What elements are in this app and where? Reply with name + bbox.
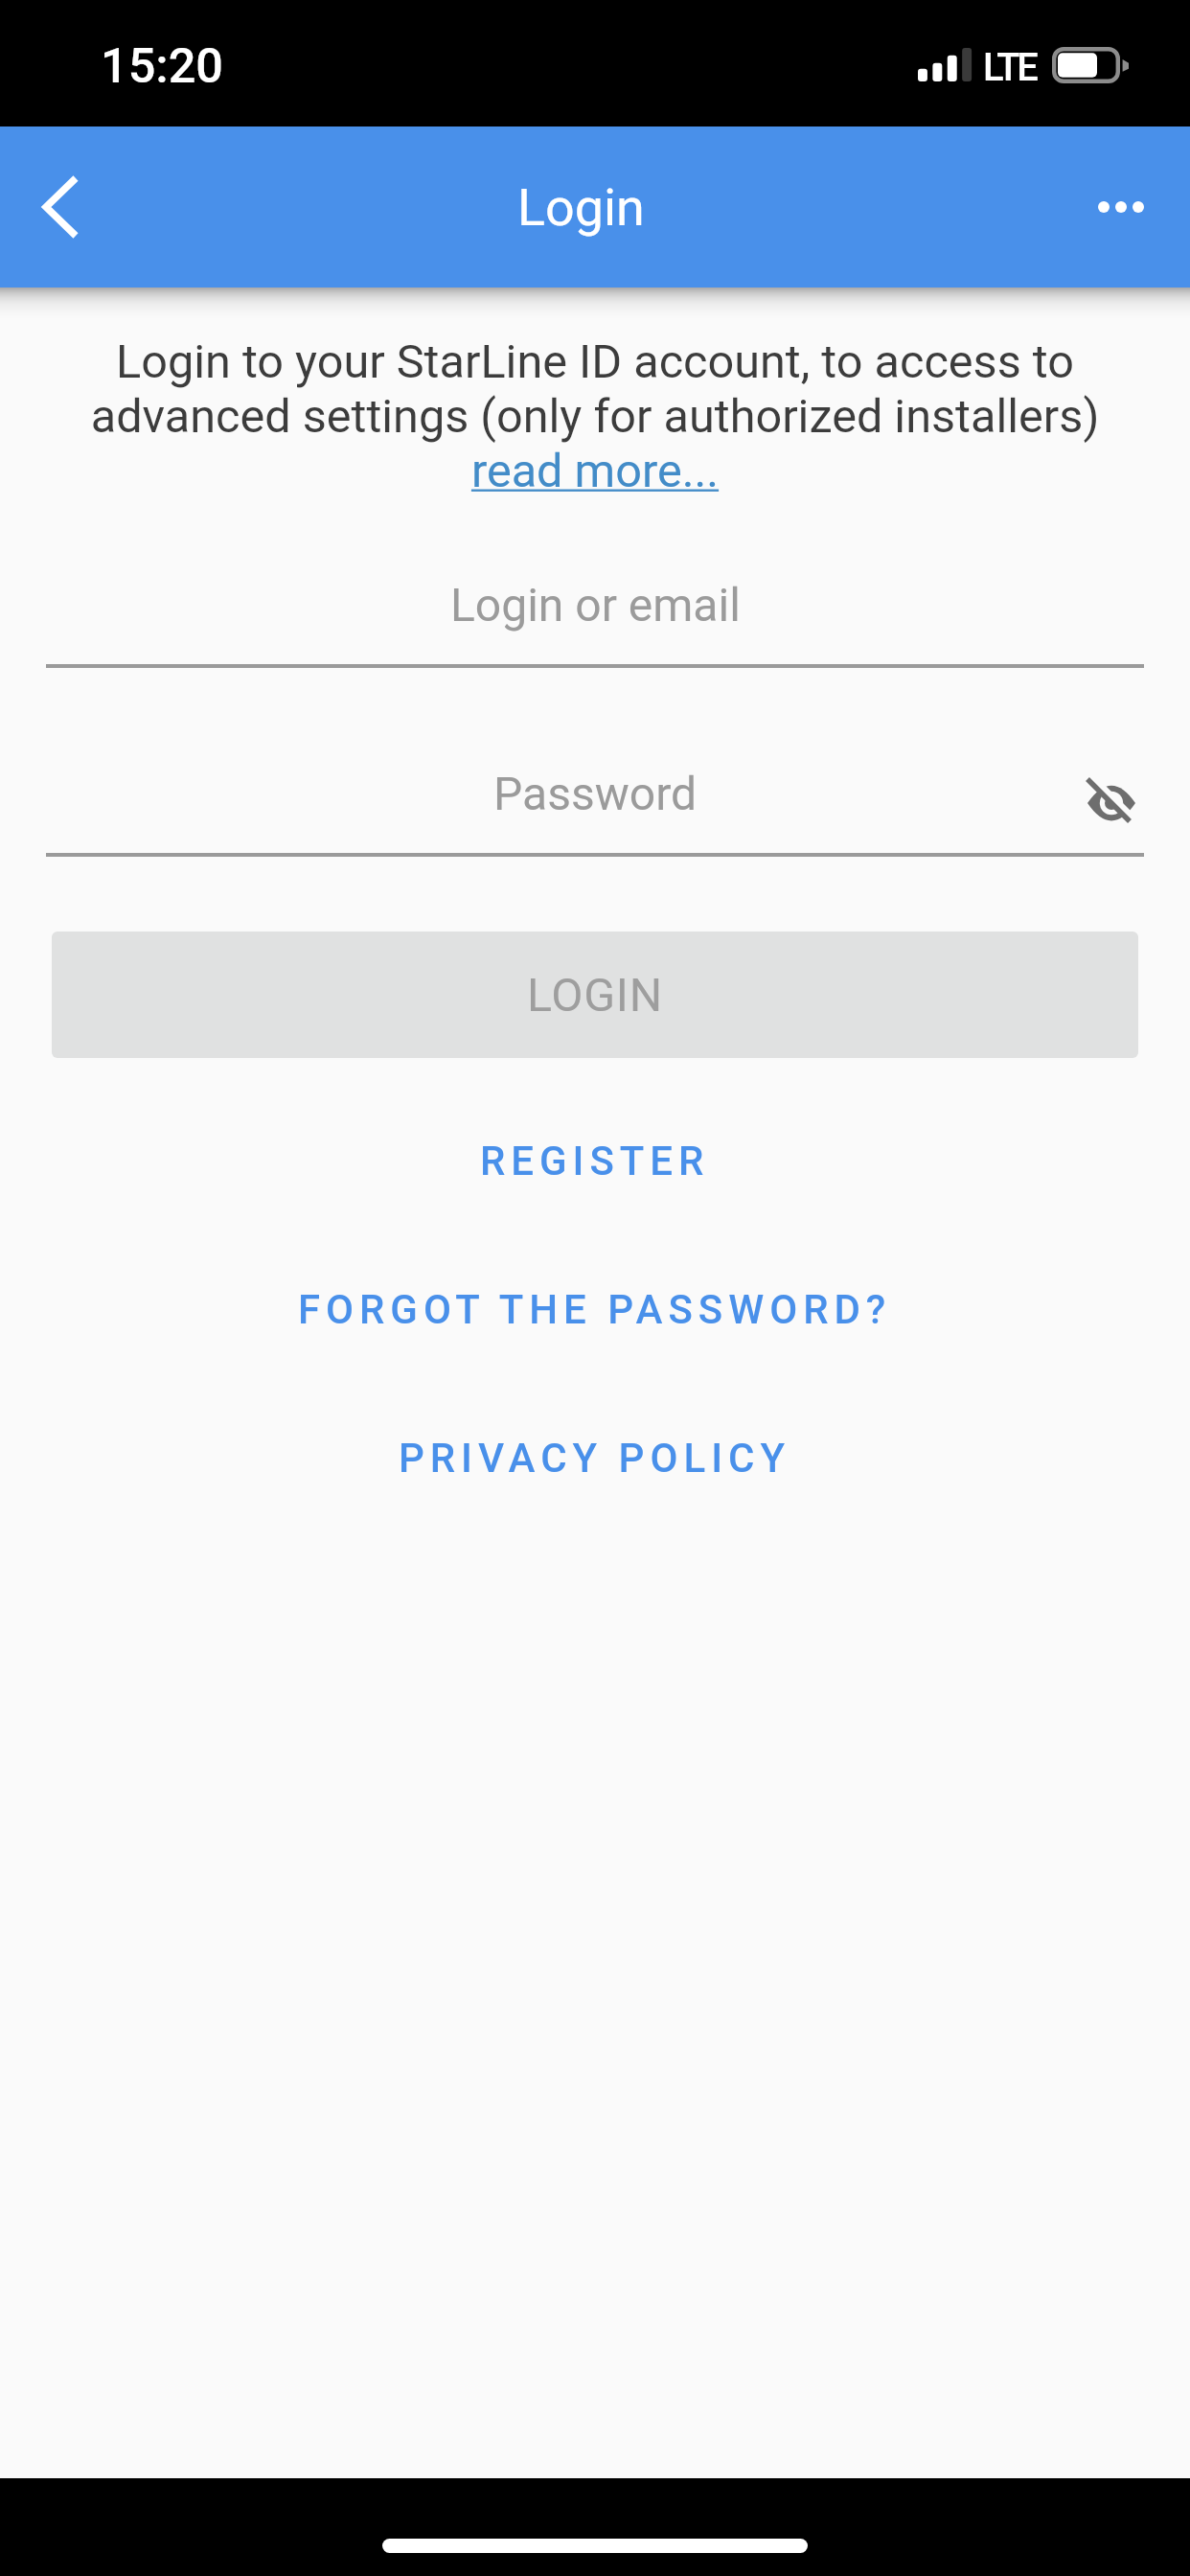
- staticText: LTE: [983, 45, 1036, 90]
- staticText: 15:20: [101, 37, 223, 94]
- button[interactable]: FORGOT THE PASSWORD?: [0, 1235, 1190, 1384]
- staticText: FORGOT THE PASSWORD?: [298, 1286, 892, 1333]
- button[interactable]: read more...: [469, 451, 721, 494]
- button[interactable]: REGISTER: [0, 1087, 1190, 1235]
- button[interactable]: Back: [2, 126, 120, 287]
- button[interactable]: PRIVACY POLICY: [0, 1384, 1190, 1532]
- staticText: PRIVACY POLICY: [399, 1435, 791, 1482]
- button[interactable]: More options: [1006, 126, 1190, 287]
- button[interactable]: LOGIN: [52, 931, 1138, 1058]
- staticText: Login to your StarLine ID account, to ac…: [57, 334, 1133, 498]
- staticText: Login: [517, 177, 645, 238]
- staticText: REGISTER: [480, 1138, 710, 1184]
- button[interactable]: Show password: [1060, 751, 1163, 855]
- staticText: Login or email: [450, 578, 741, 632]
- staticText: LOGIN: [527, 968, 663, 1023]
- staticText: Password: [493, 767, 698, 820]
